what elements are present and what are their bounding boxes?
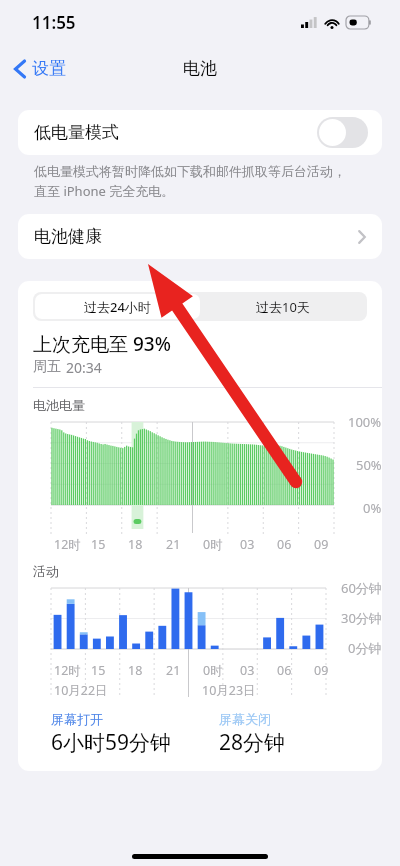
button[interactable]: 电池健康 bbox=[18, 214, 382, 259]
staticText: 15 bbox=[91, 662, 106, 679]
staticText: 06 bbox=[277, 536, 292, 553]
staticText: 活动 bbox=[33, 563, 59, 579]
staticText: 21 bbox=[166, 536, 181, 553]
staticText: 低电量模式 bbox=[34, 122, 119, 143]
staticText: 屏幕打开 bbox=[51, 711, 103, 727]
staticText: 11:55 bbox=[32, 11, 76, 34]
staticText: 06 bbox=[277, 662, 292, 679]
staticText: 20:34 bbox=[66, 358, 102, 377]
staticText: 过去10天 bbox=[256, 298, 310, 316]
staticText: 10月23日 bbox=[202, 682, 256, 699]
staticText: 周五 bbox=[33, 358, 61, 376]
staticText: 屏幕关闭 bbox=[219, 711, 271, 727]
staticText: 0时 bbox=[203, 536, 223, 553]
staticText: 电池电量 bbox=[33, 397, 85, 413]
staticText: 03 bbox=[240, 662, 255, 679]
staticText: 0时 bbox=[203, 662, 223, 679]
staticText: 10月22日 bbox=[54, 682, 108, 699]
button[interactable]: 低电量模式 bbox=[18, 110, 382, 155]
staticText: 设置 bbox=[32, 58, 66, 79]
staticText: 09 bbox=[314, 536, 329, 553]
staticText: 18 bbox=[128, 536, 143, 553]
staticText: 30分钟 bbox=[341, 609, 382, 627]
staticText: 0分钟 bbox=[348, 639, 382, 657]
staticText: 18 bbox=[128, 662, 143, 679]
button[interactable]: 设置 bbox=[10, 54, 70, 83]
staticText: 0% bbox=[363, 499, 382, 517]
staticText: 28分钟 bbox=[219, 728, 286, 757]
staticText: 直至 iPhone 完全充电。 bbox=[34, 182, 175, 200]
staticText: 09 bbox=[314, 662, 329, 679]
staticText: 15 bbox=[91, 536, 106, 553]
staticText: 21 bbox=[166, 662, 181, 679]
staticText: 低电量模式将暂时降低如下载和邮件抓取等后台活动， bbox=[34, 163, 346, 179]
button[interactable]: 过去10天 bbox=[200, 294, 365, 319]
staticText: 12时 bbox=[54, 536, 81, 553]
button[interactable]: 过去24小时 bbox=[35, 294, 200, 319]
staticText: 100% bbox=[348, 413, 382, 431]
staticText: 60分钟 bbox=[341, 579, 382, 597]
button[interactable]: 低电量模式开关 bbox=[317, 117, 368, 148]
staticText: 上次充电至 93% bbox=[33, 331, 171, 357]
staticText: 电池 bbox=[183, 58, 217, 79]
staticText: 50% bbox=[356, 456, 382, 474]
staticText: 03 bbox=[240, 536, 255, 553]
staticText: 6小时59分钟 bbox=[51, 728, 172, 757]
staticText: 过去24小时 bbox=[84, 298, 151, 316]
staticText: 12时 bbox=[54, 662, 81, 679]
staticText: 电池健康 bbox=[34, 226, 102, 247]
